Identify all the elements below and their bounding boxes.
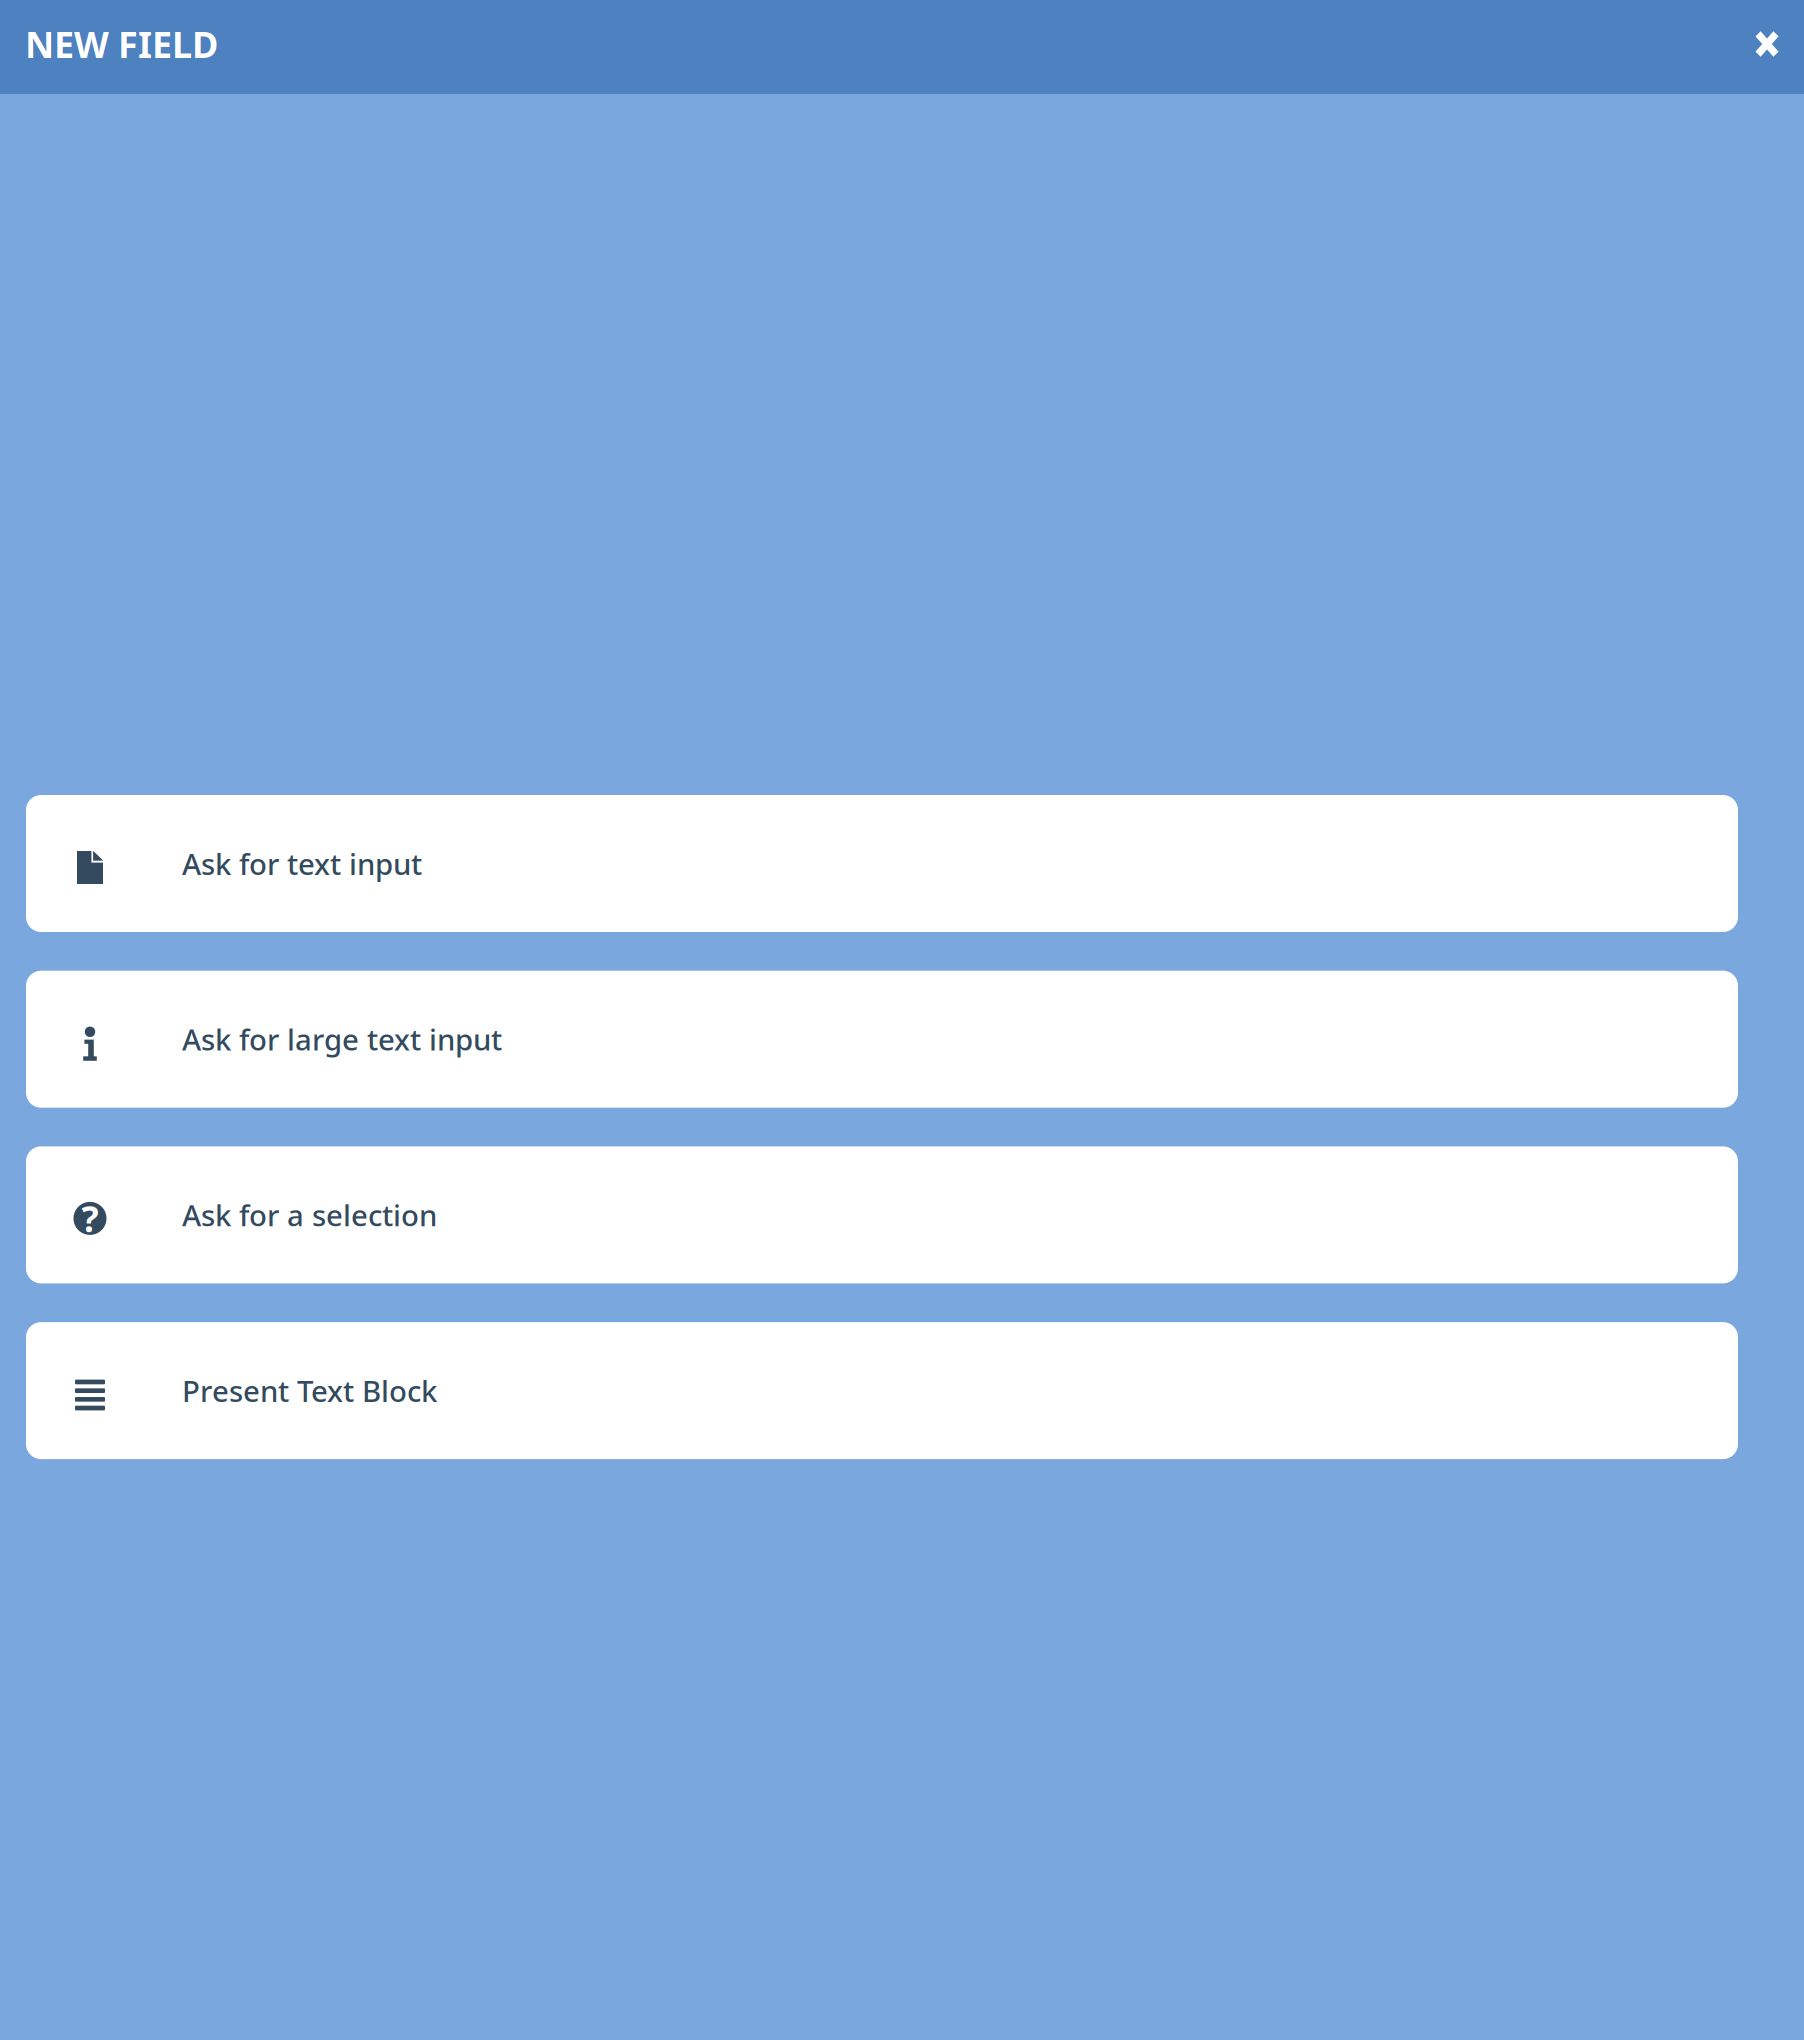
button[interactable]: Close xyxy=(1741,18,1793,70)
button[interactable]: ? xyxy=(26,1146,1738,1283)
staticText: Ask for a selection xyxy=(182,1195,437,1234)
staticText: NEW FIELD xyxy=(25,20,218,68)
staticText: ? xyxy=(81,1194,98,1242)
staticText: Present Text Block xyxy=(182,1371,437,1410)
button[interactable]: Ask for text input xyxy=(26,795,1738,932)
staticText: Ask for text input xyxy=(182,844,422,883)
button[interactable]: Ask for large text input xyxy=(26,971,1738,1108)
button[interactable]: Present Text Block xyxy=(26,1322,1738,1459)
staticText: Ask for large text input xyxy=(182,1020,502,1059)
